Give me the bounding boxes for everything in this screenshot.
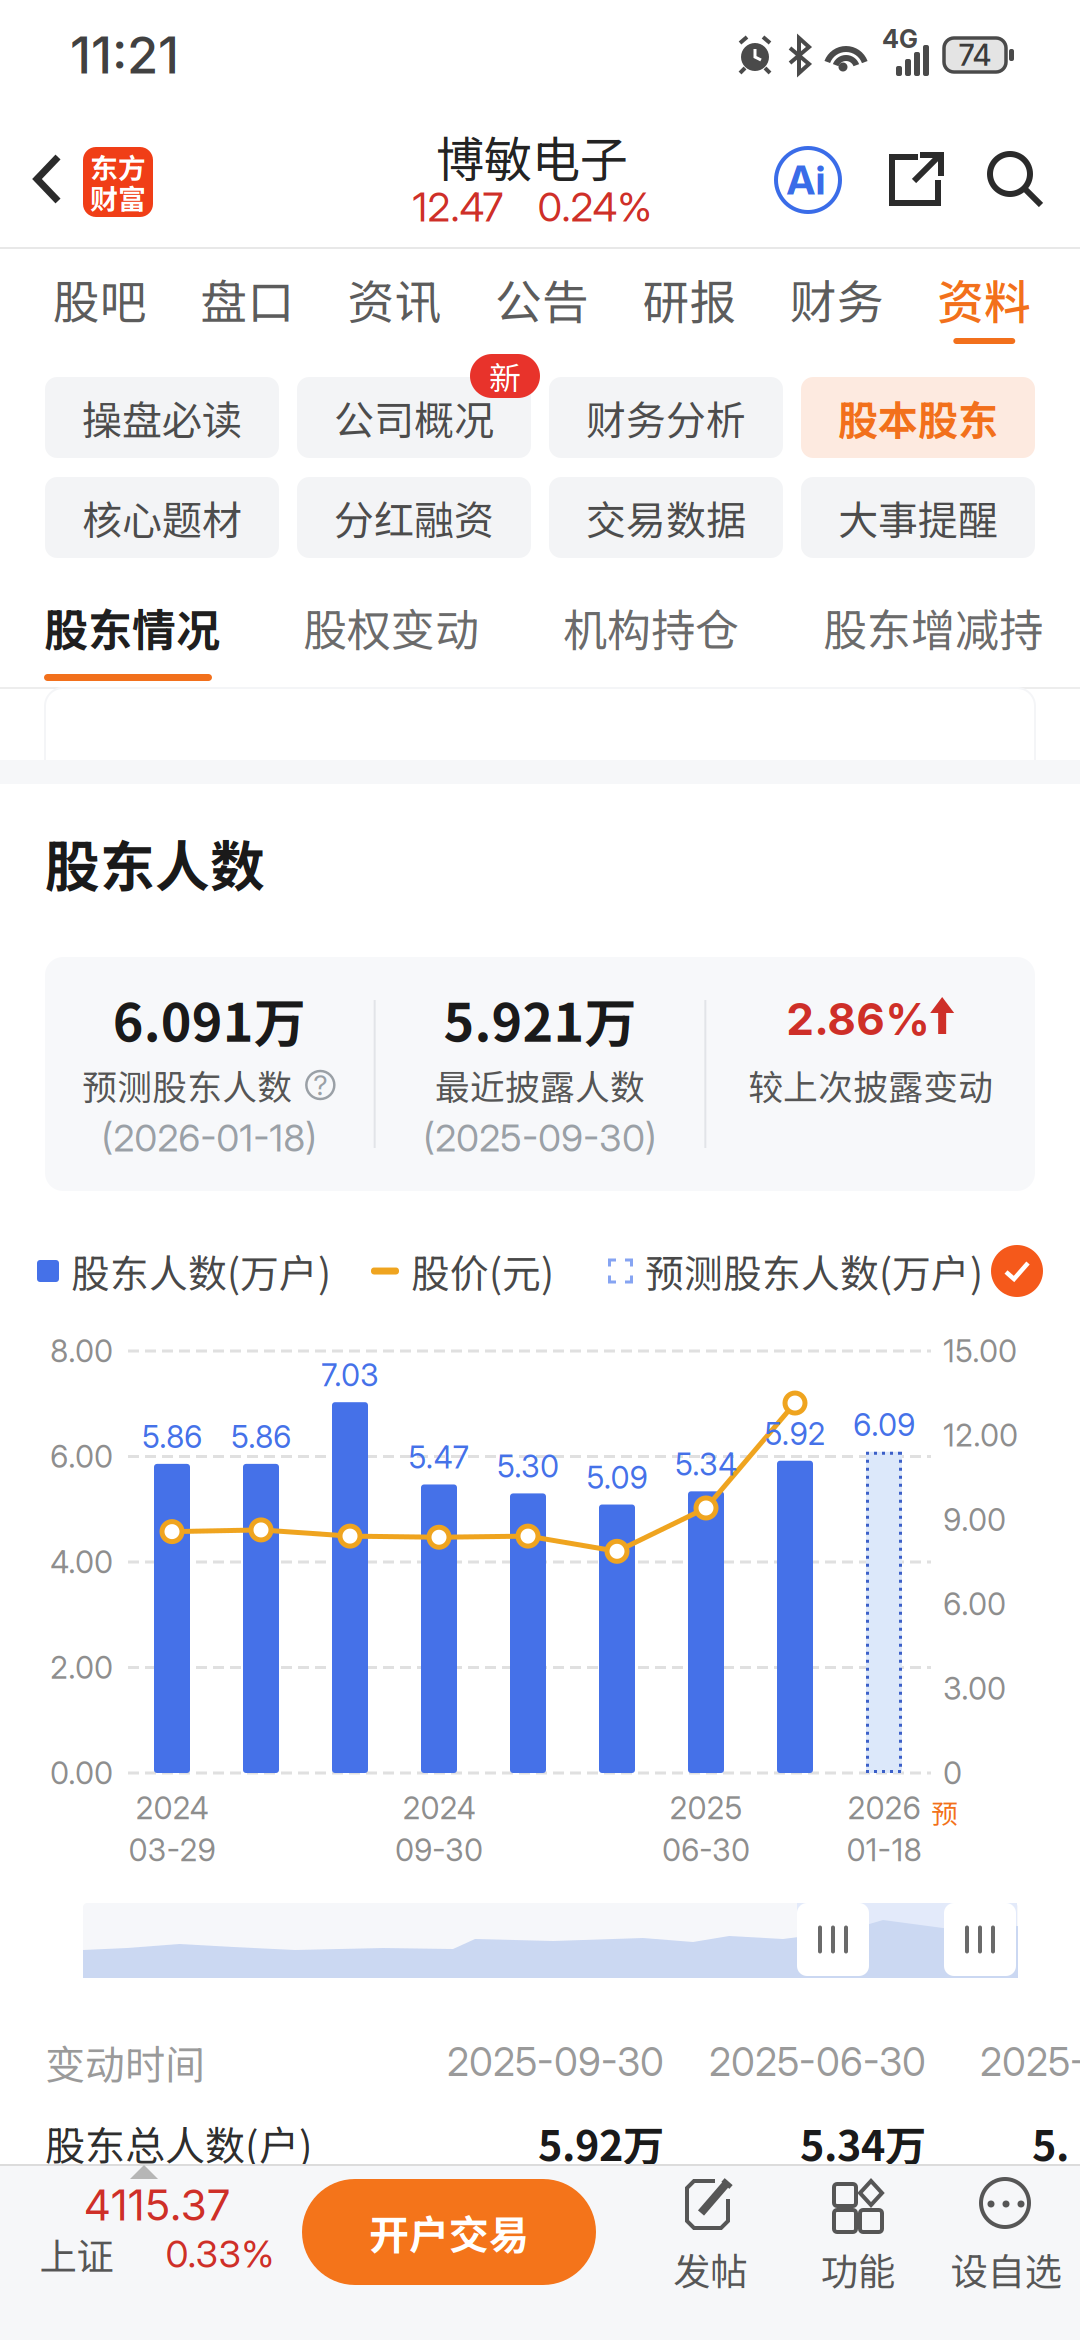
staticText: Ai — [786, 156, 825, 204]
button[interactable]: 股东增减持 — [823, 596, 1043, 692]
button[interactable]: 发帖 — [645, 2172, 775, 2296]
staticText: 5.34万 — [800, 2113, 926, 2173]
staticText: 东方 — [90, 146, 146, 187]
staticText: 9.00 — [943, 1501, 1006, 1538]
button[interactable]: Range handle — [944, 1903, 1016, 1976]
button[interactable]: 股吧 — [26, 250, 173, 352]
staticText: 5.47 — [408, 1439, 469, 1476]
button[interactable]: 财务分析 — [549, 377, 783, 458]
staticText: 功能 — [821, 2242, 895, 2296]
staticText: 6.091万 — [113, 981, 306, 1057]
staticText: 股吧 — [53, 265, 147, 333]
button[interactable]: 股本股东 — [801, 377, 1035, 458]
staticText: 预测股东人数 — [82, 1060, 292, 1110]
staticText: 2025 — [669, 1789, 742, 1826]
staticText: 4115.37 — [83, 2179, 230, 2231]
staticText: 2.00 — [50, 1649, 113, 1686]
button[interactable]: 股东情况 — [44, 596, 220, 692]
button[interactable]: 资料 — [911, 250, 1058, 352]
staticText: 74 — [958, 37, 991, 73]
staticText: 公司概况 — [334, 388, 494, 446]
button[interactable]: AI assistant — [758, 130, 858, 230]
staticText: 开户交易 — [369, 2203, 529, 2261]
staticText: 财务分析 — [586, 388, 746, 446]
staticText: 2.86% — [786, 992, 930, 1046]
staticText: 06-30 — [662, 1831, 750, 1868]
staticText: 09-30 — [395, 1831, 483, 1868]
staticText: 6.00 — [943, 1586, 1006, 1623]
staticText: 4.00 — [50, 1543, 113, 1580]
staticText: 7.03 — [321, 1357, 379, 1394]
staticText: 5.34 — [675, 1446, 737, 1483]
button[interactable]: 股权变动 — [303, 596, 479, 692]
staticText: 2024 — [402, 1789, 475, 1826]
staticText: 2025- — [980, 2039, 1080, 2085]
staticText: 2025-06-30 — [709, 2039, 926, 2085]
staticText: 4G — [882, 23, 918, 54]
staticText: 5.92 — [764, 1415, 825, 1452]
button[interactable]: Toggle forecast series — [991, 1245, 1043, 1297]
staticText: 2024 — [135, 1789, 208, 1826]
staticText: 03-29 — [128, 1831, 215, 1868]
staticText: 股本股东 — [838, 388, 998, 446]
staticText: (2025-09-30) — [423, 1115, 657, 1161]
button[interactable]: Share — [866, 130, 966, 230]
staticText: 12.00 — [943, 1417, 1018, 1454]
staticText: 5. — [1032, 2113, 1069, 2173]
button[interactable]: 研报 — [616, 250, 763, 352]
staticText: 分红融资 — [334, 488, 494, 546]
staticText: 上证 — [39, 2227, 113, 2281]
staticText: 5.86 — [231, 1418, 291, 1455]
staticText: 股东总人数(户) — [45, 2114, 313, 2172]
button[interactable]: Range handle — [797, 1903, 869, 1976]
staticText: 5.921万 — [443, 981, 636, 1057]
staticText: 0.24% — [537, 183, 651, 231]
staticText: 股东人数(万户) — [71, 1243, 331, 1299]
button[interactable]: 设自选 — [941, 2172, 1071, 2296]
staticText: 资料 — [937, 265, 1031, 333]
staticText: 公告 — [495, 265, 589, 333]
button[interactable]: Search — [966, 130, 1066, 230]
staticText: 5.30 — [497, 1448, 559, 1485]
button[interactable]: 公告 — [468, 250, 616, 352]
staticText: 预 — [931, 1793, 958, 1831]
staticText: 股东增减持 — [823, 595, 1043, 659]
staticText: 研报 — [642, 265, 736, 333]
staticText: 股价(元) — [411, 1243, 554, 1299]
button[interactable]: 分红融资 — [297, 477, 531, 558]
button[interactable]: 开户交易 — [302, 2179, 596, 2285]
staticText: 交易数据 — [586, 488, 746, 546]
staticText: 3.00 — [943, 1670, 1006, 1707]
button[interactable]: East Money home — [83, 147, 153, 217]
staticText: 0 — [943, 1754, 962, 1791]
staticText: 股东人数 — [45, 823, 265, 902]
staticText: 博敏电子 — [436, 121, 628, 191]
staticText: 机构持仓 — [563, 595, 739, 659]
button[interactable]: 功能 — [793, 2172, 923, 2296]
staticText: 新 — [489, 353, 521, 399]
staticText: 2026 — [847, 1789, 920, 1826]
staticText: 股权变动 — [303, 595, 479, 659]
button[interactable]: 操盘必读 — [45, 377, 279, 458]
button[interactable]: 公司概况 — [297, 377, 531, 458]
staticText: 15.00 — [943, 1332, 1017, 1369]
staticText: 01-18 — [846, 1831, 921, 1868]
button[interactable]: 机构持仓 — [563, 596, 739, 692]
staticText: 预测股东人数(万户) — [645, 1243, 983, 1299]
staticText: 0.33% — [165, 2231, 274, 2277]
staticText: (2026-01-18) — [101, 1115, 317, 1161]
button[interactable]: 资讯 — [321, 250, 468, 352]
staticText: ? — [313, 1068, 327, 1102]
staticText: 11:21 — [70, 24, 179, 86]
button[interactable]: 盘口 — [173, 250, 321, 352]
button[interactable]: 核心题材 — [45, 477, 279, 558]
staticText: 大事提醒 — [838, 488, 998, 546]
staticText: 设自选 — [950, 2242, 1061, 2296]
staticText: 财务 — [790, 265, 884, 333]
staticText: 变动时间 — [45, 2033, 205, 2091]
button[interactable]: 大事提醒 — [801, 477, 1035, 558]
button[interactable]: 财务 — [763, 250, 910, 352]
button[interactable]: Back — [0, 110, 96, 248]
button[interactable]: 交易数据 — [549, 477, 783, 558]
staticText: 核心题材 — [82, 488, 242, 546]
